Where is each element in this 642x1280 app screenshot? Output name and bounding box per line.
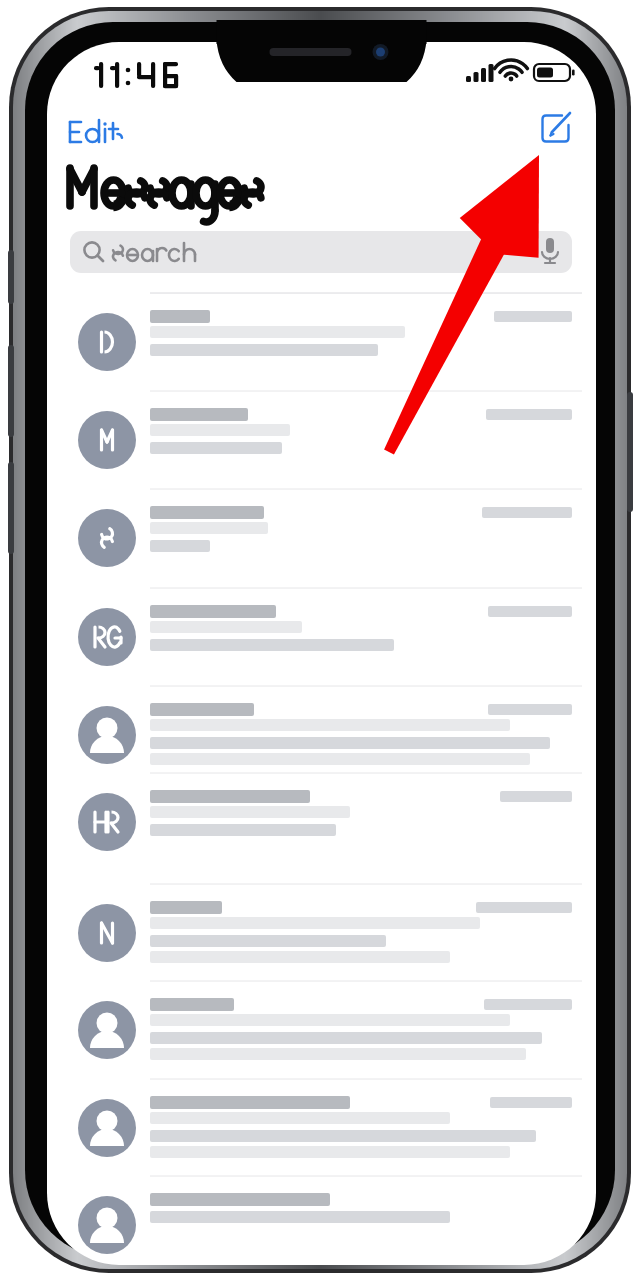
button[interactable]	[47, 774, 596, 870]
button[interactable]: Compose new message	[534, 106, 578, 150]
button[interactable]	[47, 490, 596, 586]
button[interactable]	[47, 687, 596, 783]
button[interactable]	[70, 231, 572, 273]
button[interactable]	[47, 1080, 596, 1176]
button[interactable]	[62, 112, 126, 154]
button[interactable]: Dictate search	[530, 232, 570, 272]
button[interactable]	[47, 294, 596, 390]
button[interactable]	[47, 589, 596, 685]
button[interactable]	[47, 1177, 596, 1273]
button[interactable]	[47, 885, 596, 981]
button[interactable]	[47, 982, 596, 1078]
button[interactable]	[47, 392, 596, 488]
